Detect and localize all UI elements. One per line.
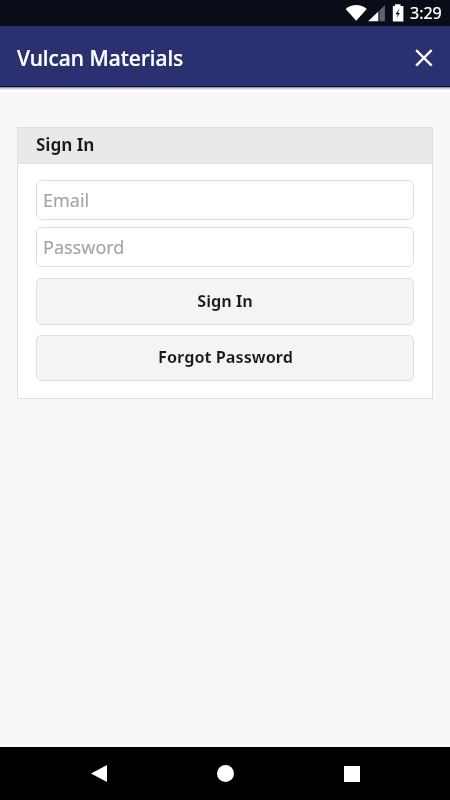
staticText: Email [43, 188, 90, 213]
button[interactable]: Password [36, 227, 414, 267]
staticText: Vulcan Materials [17, 44, 184, 73]
button[interactable]: Email [36, 180, 414, 220]
staticText: Sign In [36, 133, 95, 156]
staticText: Password [43, 235, 125, 260]
button[interactable]: Forgot Password [36, 335, 414, 381]
button[interactable]: Recent apps [324, 747, 380, 800]
button[interactable]: Sign In [36, 278, 414, 325]
button[interactable]: Back [71, 747, 127, 800]
button[interactable]: Close [402, 36, 444, 78]
staticText: Forgot Password [158, 346, 293, 368]
staticText: Sign In [197, 290, 253, 312]
button[interactable]: Home [197, 747, 253, 800]
staticText: 3:29 [410, 2, 442, 24]
